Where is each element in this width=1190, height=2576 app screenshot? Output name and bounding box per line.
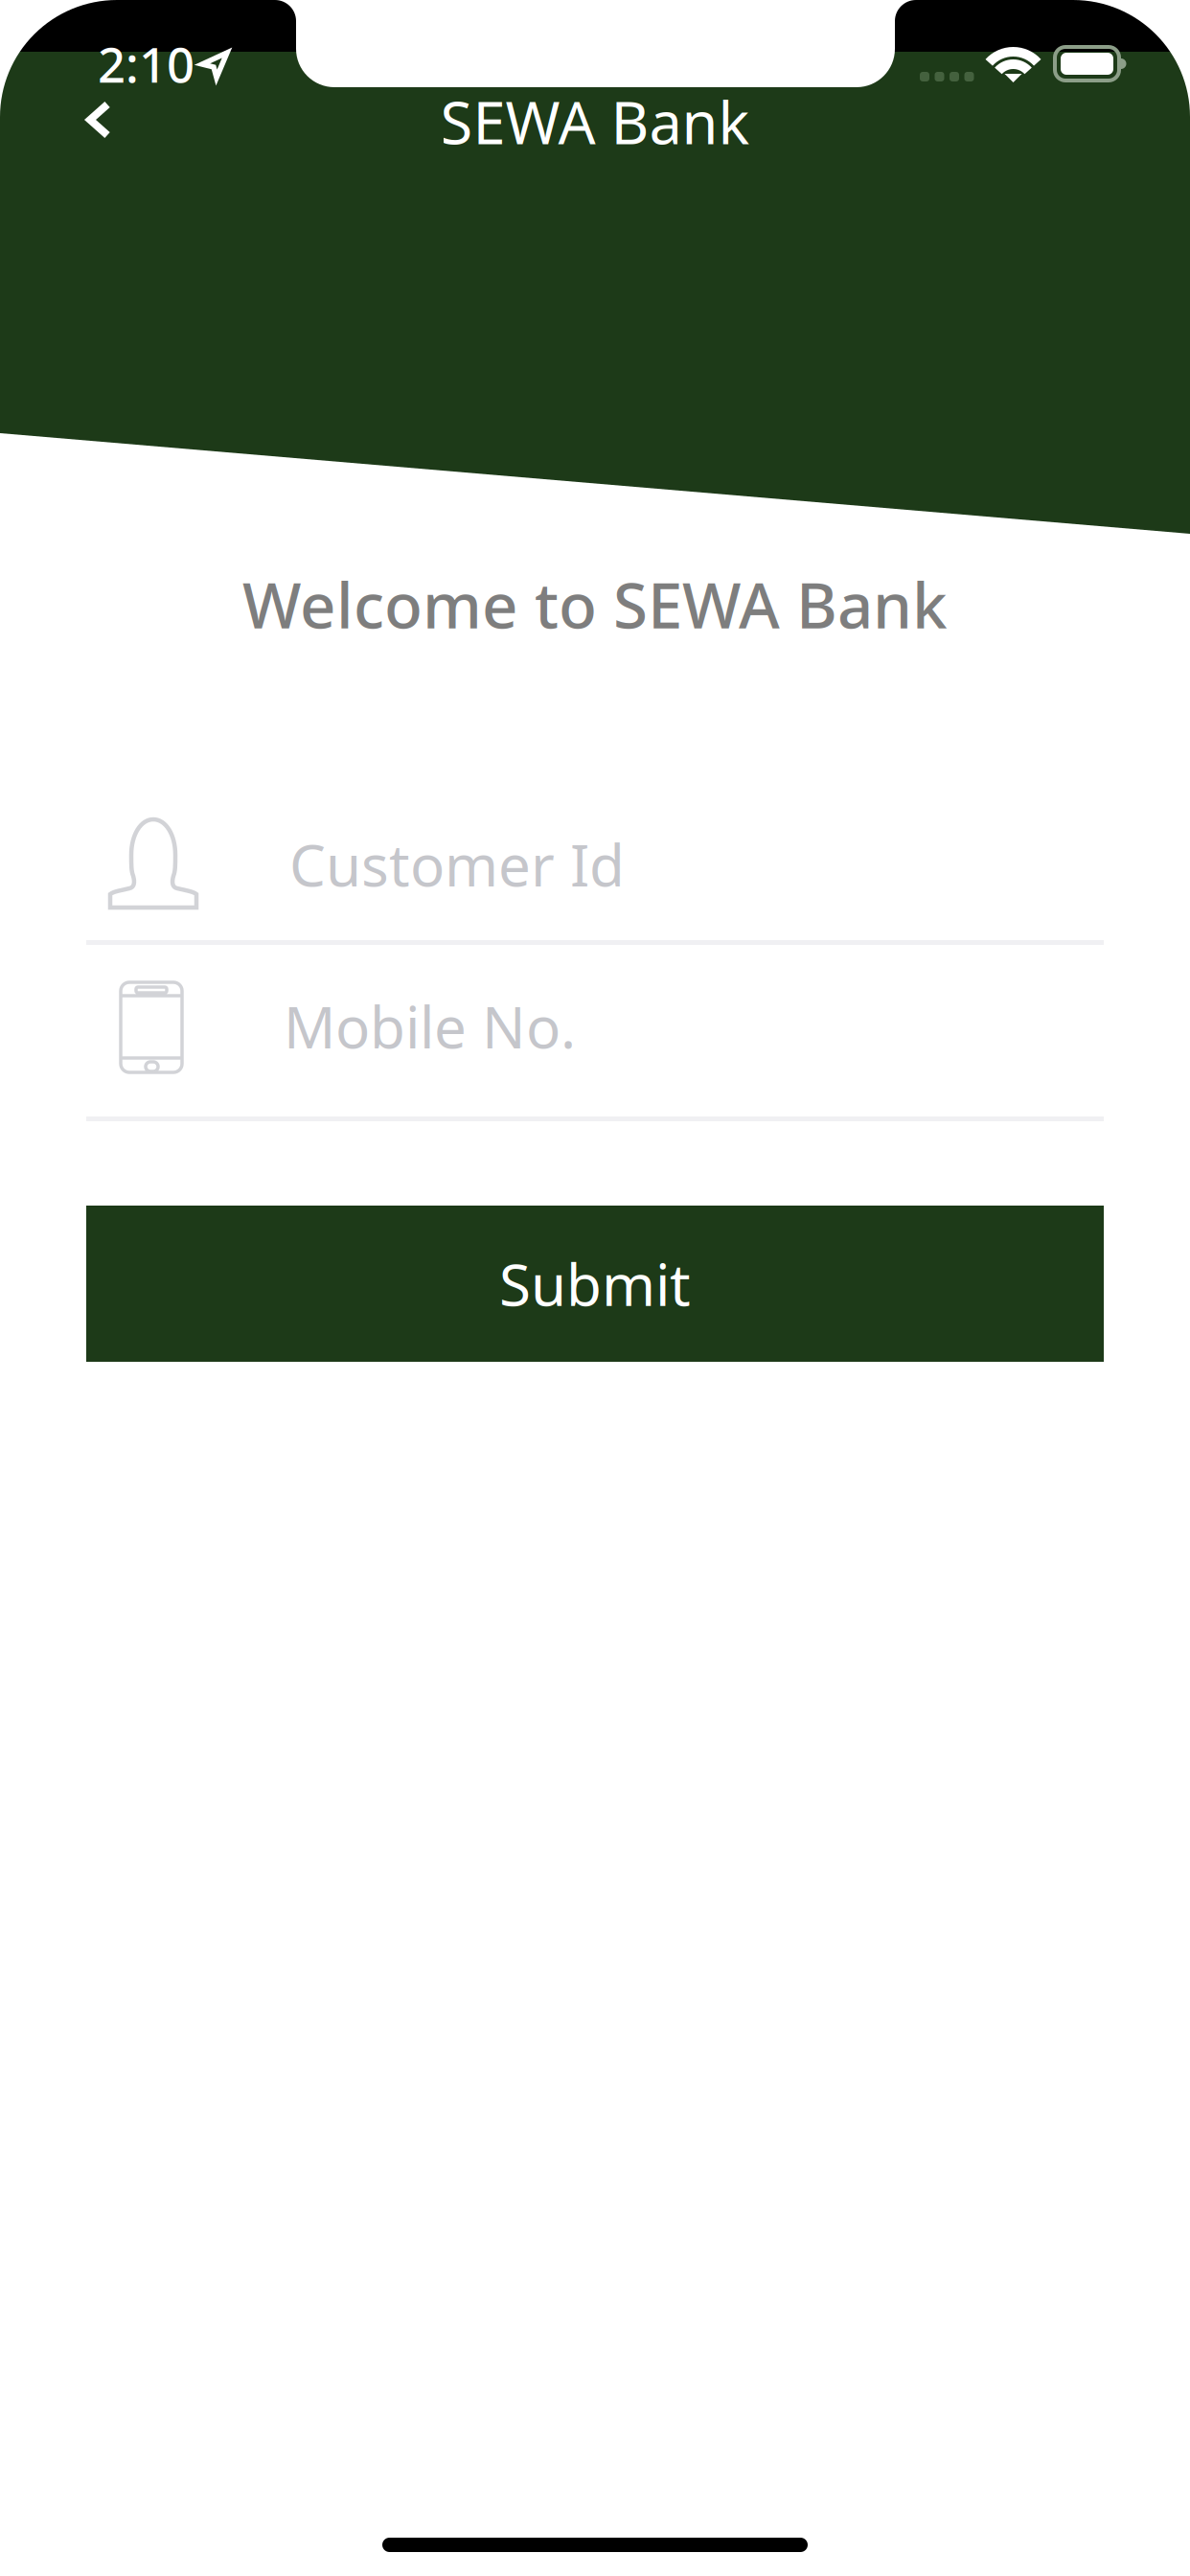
staticText: Welcome to SEWA Bank xyxy=(242,563,948,646)
staticText: Mobile No. xyxy=(284,988,576,1064)
button[interactable]: Submit xyxy=(86,1206,1104,1362)
button[interactable]: Mobile No. xyxy=(86,945,1104,1121)
staticText: Submit xyxy=(499,1246,691,1322)
staticText: 2:10 xyxy=(98,32,195,96)
staticText: SEWA Bank xyxy=(440,82,750,160)
button[interactable]: Back xyxy=(41,62,156,177)
staticText: Customer Id xyxy=(289,826,625,902)
button[interactable]: Customer Id xyxy=(86,767,1104,944)
